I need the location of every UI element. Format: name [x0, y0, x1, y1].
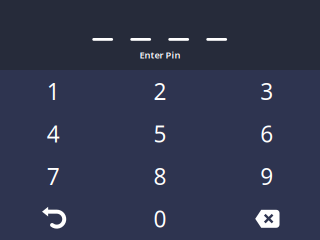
staticText: 8 [153, 161, 166, 192]
button[interactable]: 4 [0, 112, 107, 155]
button[interactable]: 3 [213, 70, 320, 112]
staticText: 0 [153, 203, 166, 234]
button[interactable]: Delete [213, 197, 320, 240]
staticText: 2 [153, 76, 166, 107]
button[interactable]: 2 [107, 70, 213, 112]
button[interactable]: Undo [0, 197, 107, 240]
staticText: 9 [260, 161, 273, 192]
button[interactable]: 0 [107, 197, 213, 240]
staticText: 5 [153, 118, 166, 149]
button[interactable]: 7 [0, 155, 107, 197]
button[interactable]: 5 [107, 112, 213, 155]
staticText: Enter Pin [139, 49, 180, 61]
staticText: 3 [260, 76, 273, 107]
button[interactable]: 1 [0, 70, 107, 112]
staticText: 1 [47, 76, 60, 107]
staticText: 6 [260, 118, 273, 149]
staticText: 7 [47, 161, 60, 192]
button[interactable]: 8 [107, 155, 213, 197]
button[interactable]: 6 [213, 112, 320, 155]
staticText: 4 [47, 118, 60, 149]
button[interactable]: 9 [213, 155, 320, 197]
